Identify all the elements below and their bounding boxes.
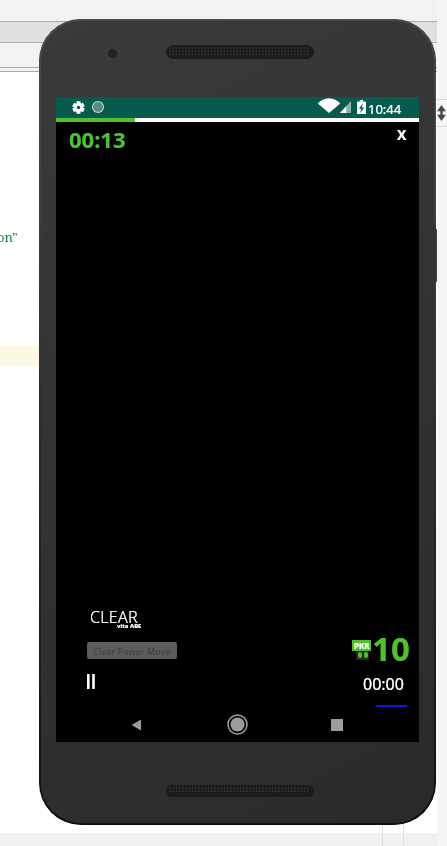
staticText: CLEAR [90,606,138,628]
staticText: 10 [372,626,410,671]
staticText: 00:13 [69,124,126,154]
staticText: on" [0,228,18,246]
staticText: 10:44 [368,100,402,118]
staticText: PKR [354,640,370,651]
staticText: X [397,125,407,144]
button[interactable]: Pause [85,673,103,690]
staticText: 00:00 [363,673,404,695]
button[interactable]: Home [217,707,257,742]
button[interactable]: Recents [317,707,357,742]
staticText: vita ABE [117,622,142,630]
button[interactable]: Close [391,123,413,145]
button[interactable]: Back [116,707,156,742]
staticText: Clear Power Move [93,645,171,657]
button[interactable]: Clear Power Move [87,642,177,659]
